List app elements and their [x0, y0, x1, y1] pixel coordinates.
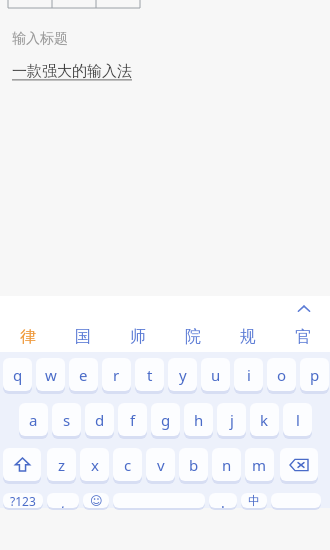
- staticText: l: [296, 410, 300, 430]
- staticText: 师: [130, 327, 146, 347]
- button[interactable]: Space: [113, 493, 205, 508]
- button[interactable]: 官: [275, 322, 330, 352]
- button[interactable]: i: [234, 358, 263, 396]
- button[interactable]: ?123: [3, 493, 43, 508]
- staticText: w: [45, 365, 57, 385]
- button[interactable]: n: [212, 448, 241, 486]
- button[interactable]: m: [245, 448, 274, 486]
- button[interactable]: d: [85, 403, 114, 441]
- staticText: 律: [20, 327, 36, 347]
- staticText: 院: [185, 327, 201, 347]
- staticText: d: [95, 410, 105, 430]
- staticText: ,: [61, 493, 65, 508]
- button[interactable]: 师: [110, 322, 165, 352]
- button[interactable]: j: [217, 403, 246, 441]
- staticText: 官: [295, 327, 311, 347]
- staticText: 规: [240, 327, 256, 347]
- button[interactable]: o: [267, 358, 296, 396]
- staticText: y: [179, 365, 187, 385]
- staticText: 中: [248, 493, 260, 508]
- button[interactable]: ☺: [83, 493, 109, 508]
- button[interactable]: Enter: [271, 493, 321, 508]
- button[interactable]: Collapse keyboard: [292, 297, 316, 321]
- button[interactable]: g: [151, 403, 180, 441]
- button[interactable]: a: [19, 403, 48, 441]
- staticText: m: [252, 455, 267, 475]
- button[interactable]: Shift: [3, 448, 41, 486]
- staticText: r: [113, 365, 120, 385]
- staticText: t: [147, 365, 153, 385]
- button[interactable]: Backspace: [280, 448, 318, 486]
- button[interactable]: k: [250, 403, 279, 441]
- button[interactable]: e: [69, 358, 98, 396]
- staticText: ☺: [90, 494, 103, 508]
- button[interactable]: z: [47, 448, 76, 486]
- staticText: a: [29, 410, 38, 430]
- button[interactable]: w: [36, 358, 65, 396]
- staticText: 一款强大的输入法: [12, 62, 132, 81]
- button[interactable]: 律: [0, 322, 55, 352]
- button[interactable]: c: [113, 448, 142, 486]
- button[interactable]: h: [184, 403, 213, 441]
- staticText: b: [189, 455, 199, 475]
- button[interactable]: q: [3, 358, 32, 396]
- staticText: 输入标题: [12, 30, 68, 48]
- button[interactable]: p: [300, 358, 329, 396]
- button[interactable]: 院: [165, 322, 220, 352]
- staticText: g: [161, 410, 171, 430]
- button[interactable]: l: [283, 403, 312, 441]
- button[interactable]: y: [168, 358, 197, 396]
- button[interactable]: v: [146, 448, 175, 486]
- button[interactable]: f: [118, 403, 147, 441]
- staticText: v: [157, 455, 165, 475]
- button[interactable]: 一款强大的输入法: [12, 62, 132, 81]
- button[interactable]: x: [80, 448, 109, 486]
- button[interactable]: t: [135, 358, 164, 396]
- staticText: q: [13, 365, 23, 385]
- button[interactable]: 规: [220, 322, 275, 352]
- staticText: .: [221, 493, 225, 508]
- button[interactable]: .: [209, 493, 237, 508]
- staticText: x: [91, 455, 99, 475]
- staticText: u: [211, 365, 221, 385]
- button[interactable]: 国: [55, 322, 110, 352]
- button[interactable]: ,: [47, 493, 79, 508]
- staticText: p: [310, 365, 320, 385]
- button[interactable]: b: [179, 448, 208, 486]
- staticText: 国: [75, 327, 91, 347]
- staticText: n: [222, 455, 232, 475]
- staticText: s: [63, 410, 71, 430]
- staticText: z: [58, 455, 66, 475]
- staticText: i: [247, 365, 251, 385]
- button[interactable]: 中: [241, 493, 267, 508]
- staticText: f: [130, 410, 136, 430]
- staticText: c: [124, 455, 132, 475]
- staticText: j: [230, 410, 234, 430]
- staticText: e: [79, 365, 88, 385]
- button[interactable]: r: [102, 358, 131, 396]
- button[interactable]: s: [52, 403, 81, 441]
- staticText: o: [277, 365, 287, 385]
- staticText: h: [194, 410, 204, 430]
- staticText: ?123: [10, 493, 36, 508]
- staticText: k: [260, 410, 269, 430]
- button[interactable]: u: [201, 358, 230, 396]
